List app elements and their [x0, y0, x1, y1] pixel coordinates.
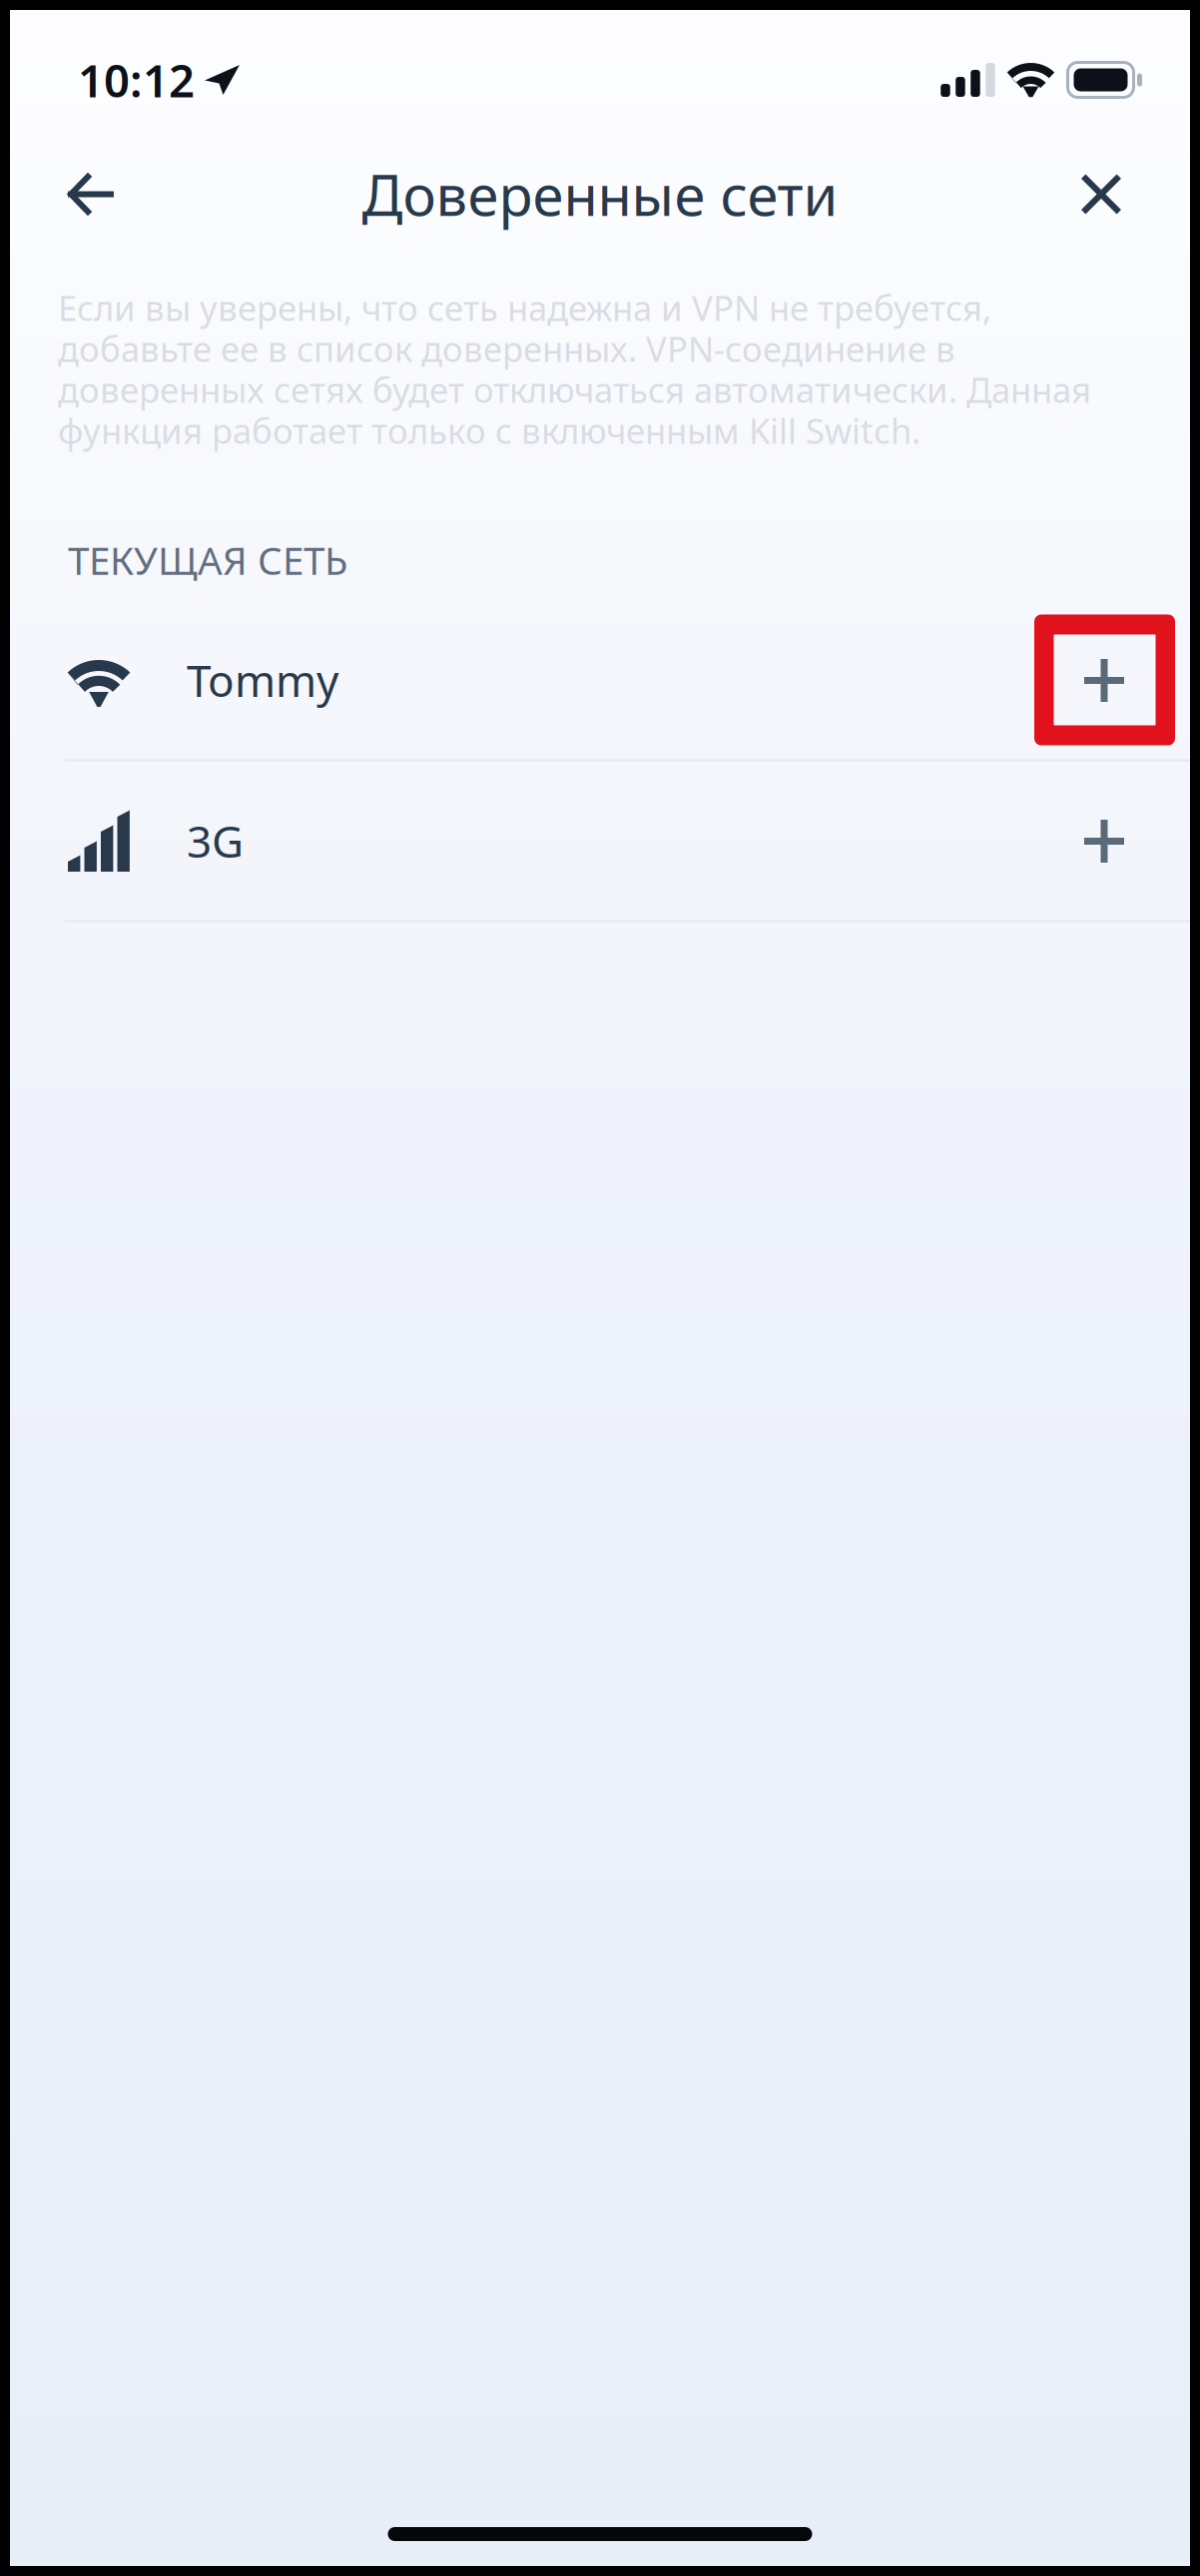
button[interactable]: Назад	[45, 148, 137, 240]
button[interactable]: Добавить 3G	[1034, 775, 1200, 906]
staticText: Доверенные сети	[362, 157, 838, 231]
staticText: ТЕКУЩАЯ СЕТЬ	[68, 534, 347, 585]
button[interactable]: Закрыть	[1055, 148, 1147, 240]
staticText: Если вы уверены, что сеть надежна и VPN …	[58, 285, 1091, 453]
staticText: Tommy	[187, 651, 338, 709]
staticText: 10:12	[78, 50, 195, 110]
staticText: 3G	[187, 812, 244, 870]
button[interactable]: Добавить Tommy	[1034, 615, 1200, 745]
